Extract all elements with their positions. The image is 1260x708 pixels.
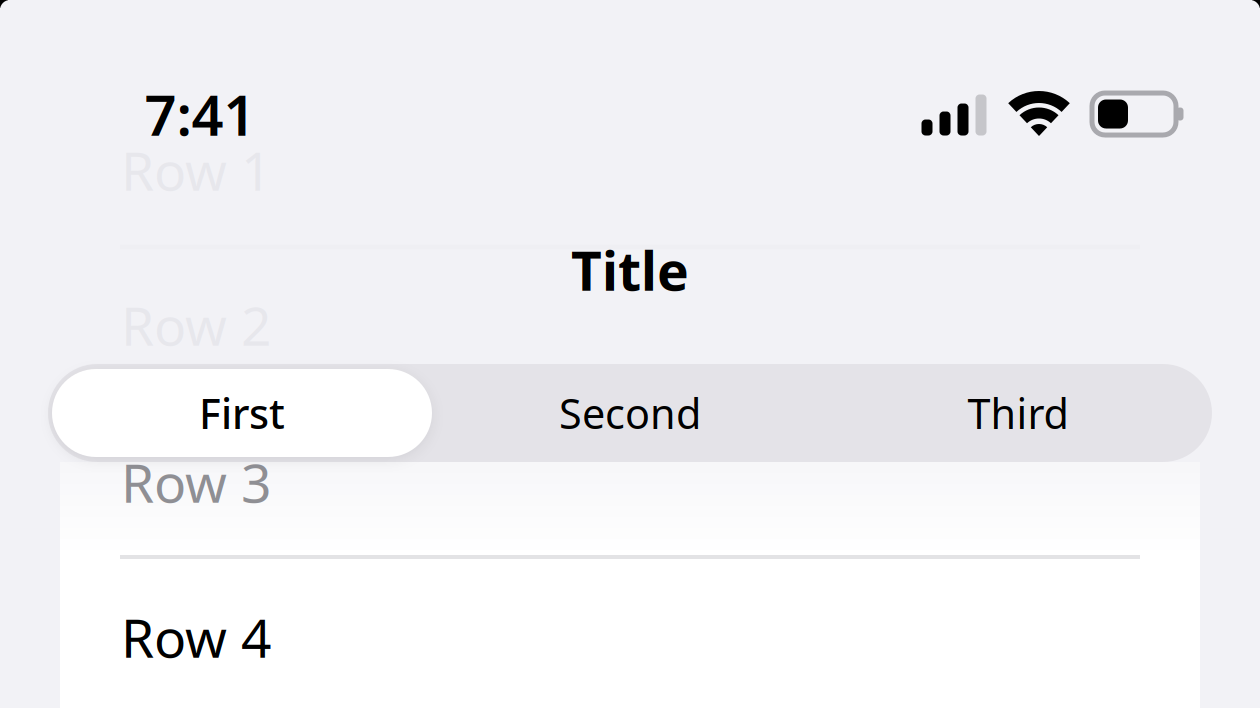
staticText: Row 4	[121, 602, 272, 672]
button[interactable]: Row 4	[60, 559, 1200, 708]
staticText: Row 2	[121, 290, 272, 360]
staticText: Third	[967, 386, 1068, 440]
staticText: Title	[571, 235, 689, 305]
staticText: Row 3	[121, 447, 272, 517]
staticText: First	[199, 386, 285, 440]
button[interactable]: Row 2	[60, 247, 1200, 403]
staticText: Second	[559, 386, 701, 440]
staticText: Row 1	[121, 135, 272, 205]
button[interactable]: Row 1	[60, 92, 1200, 248]
button[interactable]: Row 3	[60, 404, 1200, 560]
button[interactable]: First	[48, 364, 436, 462]
staticText: 7:41	[144, 77, 255, 151]
button[interactable]: Third	[824, 364, 1212, 462]
button[interactable]: Second	[436, 364, 824, 462]
